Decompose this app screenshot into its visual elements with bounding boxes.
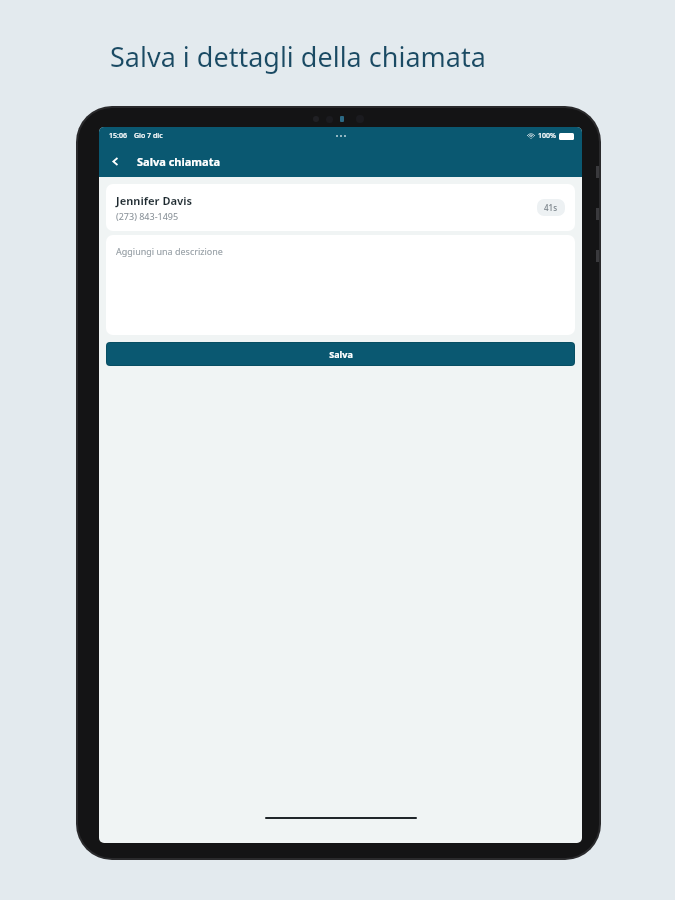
staticText: Salva (329, 348, 353, 360)
staticText: 15:06 (109, 131, 127, 141)
staticText: Aggiungi una descrizione (116, 245, 223, 257)
staticText: 41s (544, 202, 558, 213)
staticText: Gio 7 dic (134, 131, 163, 141)
button[interactable]: Jennifer Davis (106, 184, 575, 231)
staticText: Salva i dettagli della chiamata (110, 38, 486, 75)
staticText: (273) 843-1495 (116, 210, 179, 222)
button[interactable]: Salva (107, 343, 574, 365)
button[interactable]: Aggiungi una descrizione (106, 235, 575, 335)
staticText: Salva chiamata (137, 154, 221, 169)
staticText: Jennifer Davis (116, 193, 193, 208)
button[interactable]: Back (99, 150, 129, 173)
staticText: 100% (538, 131, 556, 141)
